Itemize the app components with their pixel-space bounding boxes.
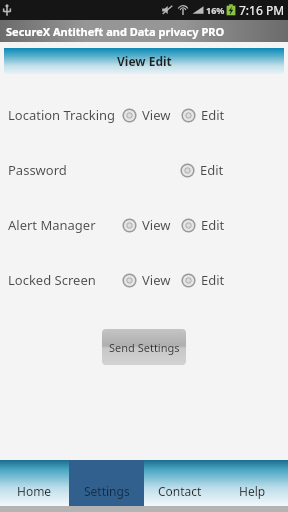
staticText: View [142,106,171,124]
staticText: Edit [201,271,225,289]
button[interactable]: View [120,214,173,236]
button[interactable]: Edit [179,269,227,291]
staticText: Locked Screen [8,271,120,289]
staticText: 7:16 PM [239,2,285,18]
staticText: Edit [201,106,225,124]
staticText: Send Settings [109,340,180,355]
button[interactable]: View [120,104,173,126]
staticText: Settings [84,483,130,499]
staticText: View Edit [117,53,172,69]
button[interactable]: Edit [179,104,227,126]
staticText: View [142,216,171,234]
staticText: SecureX Antitheft and Data privacy PRO [6,24,225,39]
button[interactable]: Send Settings [102,329,186,365]
staticText: Alert Manager [8,216,120,234]
button[interactable]: View [120,269,173,291]
staticText: 16% [206,4,225,16]
button[interactable]: Contact [144,460,216,506]
staticText: Contact [158,483,202,499]
button[interactable]: Edit [178,159,226,181]
staticText: Edit [200,161,224,179]
button[interactable]: View Edit [4,48,284,74]
button[interactable]: Home [0,460,69,506]
staticText: Help [239,483,266,499]
staticText: Home [17,483,52,499]
button[interactable]: Settings [69,460,144,506]
staticText: Location Tracking [8,106,120,124]
other: USB connected [1,4,13,17]
button[interactable]: Help [216,460,288,506]
button[interactable]: Edit [179,214,227,236]
staticText: View [142,271,171,289]
staticText: Edit [201,216,225,234]
staticText: Password [8,161,120,179]
